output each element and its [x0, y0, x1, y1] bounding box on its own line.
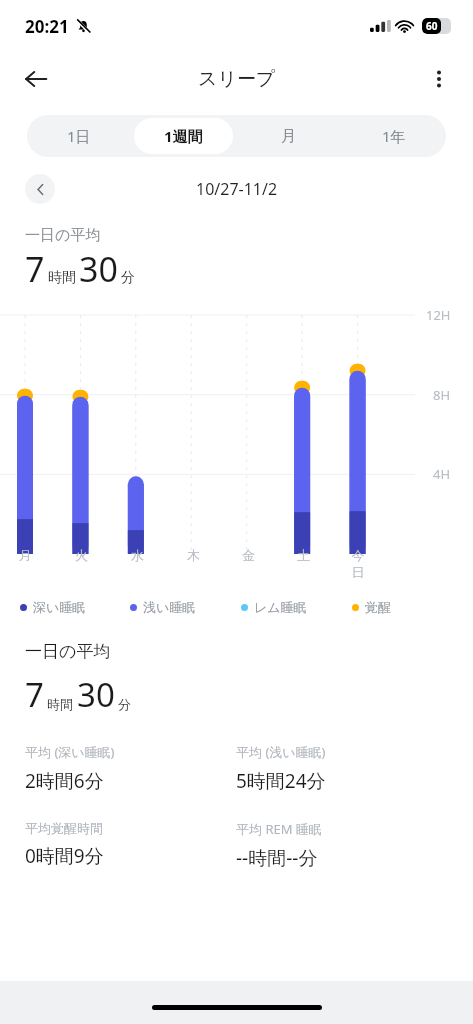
staticText: 7	[25, 246, 45, 292]
staticText: 1日	[67, 126, 91, 146]
staticText: 20:21	[25, 15, 69, 38]
staticText: 今日	[350, 547, 366, 581]
staticText: 30	[77, 672, 115, 717]
button[interactable]: 1週間	[134, 118, 233, 154]
staticText: 7	[25, 672, 44, 717]
staticText: 2時間6分	[25, 768, 104, 794]
staticText: 平均覚醒時間	[25, 820, 103, 836]
button[interactable]: 1日	[30, 118, 128, 154]
staticText: 8H	[433, 386, 451, 404]
button[interactable]: 月	[239, 118, 338, 154]
button[interactable]: 1年	[344, 118, 443, 154]
staticText: 水	[131, 547, 144, 563]
staticText: 分	[121, 269, 135, 287]
staticText: 金	[242, 547, 255, 563]
staticText: 0時間9分	[25, 843, 104, 869]
staticText: レム睡眠	[254, 599, 307, 615]
staticText: --時間--分	[236, 845, 318, 871]
staticText: 1週間	[164, 126, 203, 146]
staticText: 一日の平均	[25, 226, 101, 245]
staticText: 30	[79, 246, 118, 292]
staticText: 木	[187, 547, 200, 563]
staticText: 一日の平均	[25, 641, 111, 662]
button[interactable]: More options	[416, 56, 462, 102]
staticText: 4H	[433, 465, 451, 483]
staticText: 時間	[48, 269, 76, 287]
staticText: 覚醒	[365, 599, 391, 615]
staticText: 深い睡眠	[33, 599, 86, 615]
staticText: 浅い睡眠	[143, 599, 196, 615]
staticText: 土	[297, 547, 310, 563]
staticText: 時間	[47, 696, 73, 712]
button[interactable]: Back	[13, 56, 59, 102]
staticText: 分	[118, 696, 131, 712]
staticText: 平均 (深い睡眠)	[25, 743, 115, 761]
staticText: 月	[19, 547, 32, 563]
staticText: 12H	[426, 306, 451, 324]
staticText: 平均 REM 睡眠	[236, 820, 322, 838]
staticText: 月	[281, 127, 296, 146]
staticText: スリープ	[198, 67, 276, 91]
staticText: 1年	[382, 126, 406, 146]
staticText: 60	[426, 19, 438, 33]
staticText: 10/27-11/2	[196, 178, 278, 200]
staticText: 5時間24分	[236, 768, 326, 794]
staticText: 火	[75, 547, 88, 563]
staticText: 平均 (浅い睡眠)	[236, 743, 326, 761]
button[interactable]: Previous period	[25, 174, 55, 204]
